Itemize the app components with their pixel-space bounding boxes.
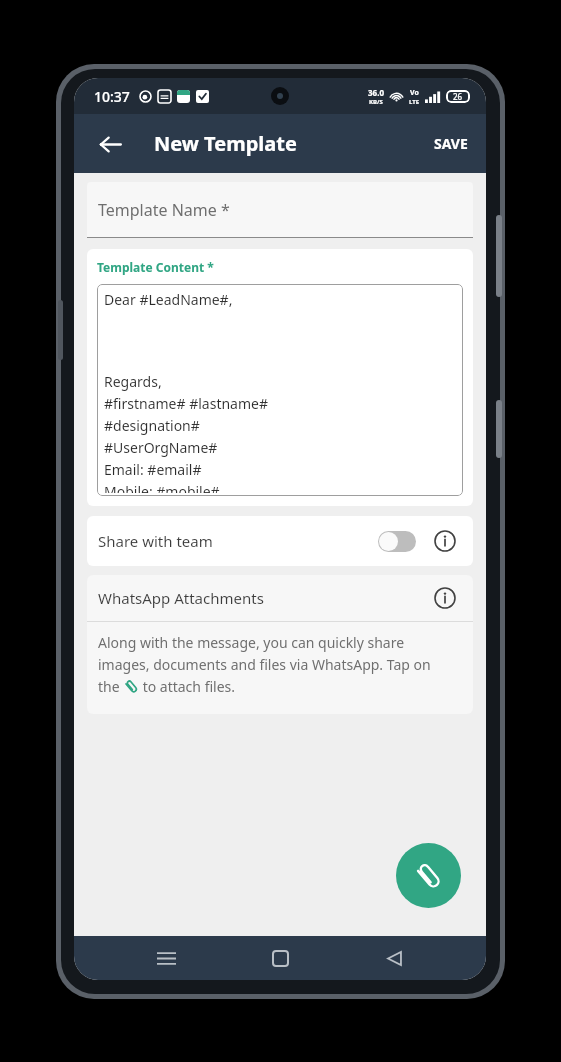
- staticText: 10:37: [94, 87, 130, 106]
- button[interactable]: SAVE: [424, 126, 478, 161]
- button[interactable]: Share with team: [87, 516, 473, 566]
- staticText: SAVE: [434, 134, 468, 153]
- button[interactable]: Home: [258, 936, 302, 980]
- staticText: KB/S: [369, 98, 383, 106]
- button[interactable]: Template Name *: [87, 182, 473, 238]
- staticText: images, documents and files via WhatsApp…: [98, 655, 431, 674]
- staticText: Vo: [410, 88, 419, 98]
- button[interactable]: Information: [430, 526, 460, 556]
- button[interactable]: Attach files: [396, 843, 461, 908]
- staticText: #designation#: [104, 416, 200, 435]
- staticText: Email: #email#: [104, 460, 202, 479]
- button[interactable]: WhatsApp Attachments: [87, 575, 473, 621]
- button[interactable]: Share with team toggle: [378, 531, 416, 552]
- staticText: New Template: [154, 130, 297, 157]
- button[interactable]: Back: [88, 122, 132, 166]
- staticText: Regards,: [104, 372, 162, 391]
- button[interactable]: Information: [430, 583, 460, 613]
- staticText: Dear #LeadName#,: [104, 290, 233, 309]
- staticText: 36.0: [368, 87, 384, 98]
- button[interactable]: Recent apps: [144, 936, 188, 980]
- button[interactable]: Back: [372, 936, 416, 980]
- staticText: Template Name *: [98, 199, 230, 221]
- staticText: the: [98, 677, 124, 696]
- staticText: #firstname# #lastname#: [104, 394, 268, 413]
- staticText: Mobile: #mobile#: [104, 482, 220, 493]
- staticText: Share with team: [98, 531, 213, 551]
- staticText: 26: [453, 91, 463, 102]
- staticText: LTE: [409, 98, 420, 106]
- button[interactable]: Dear #LeadName#,: [97, 284, 463, 496]
- staticText: Along with the message, you can quickly …: [98, 633, 405, 652]
- staticText: #UserOrgName#: [104, 438, 218, 457]
- staticText: Template Content *: [97, 259, 214, 275]
- staticText: WhatsApp Attachments: [98, 588, 264, 608]
- staticText: to attach files.: [139, 677, 236, 696]
